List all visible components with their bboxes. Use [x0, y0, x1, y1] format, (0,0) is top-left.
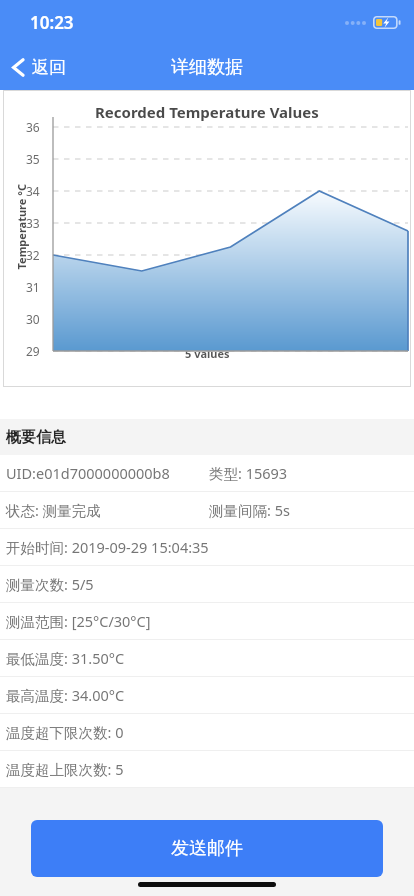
button[interactable]: 最高温度: 34.00°C	[0, 677, 414, 713]
staticText: 概要信息	[6, 428, 66, 447]
staticText: Temperature °C	[13, 183, 28, 269]
staticText: 32	[26, 247, 40, 263]
staticText: 测量间隔: 5s	[209, 500, 290, 520]
button[interactable]: 温度超上限次数: 5	[0, 751, 414, 787]
staticText: 34	[26, 183, 40, 199]
staticText: 30	[26, 311, 40, 327]
other: Back	[9, 56, 28, 79]
button[interactable]: 测量次数: 5/5	[0, 566, 414, 602]
staticText: 31	[26, 279, 40, 295]
staticText: 36	[26, 119, 40, 135]
staticText: 35	[26, 151, 40, 167]
staticText: 5 values	[185, 346, 230, 361]
button[interactable]: 测温范围: [25°C/30°C]	[0, 603, 414, 639]
staticText: 最高温度: 34.00°C	[6, 685, 125, 705]
staticText: 返回	[32, 57, 66, 78]
staticText: 测量次数: 5/5	[6, 574, 94, 594]
button[interactable]: 发送邮件	[31, 820, 383, 877]
button[interactable]: 开始时间: 2019-09-29 15:04:35	[0, 529, 414, 565]
button[interactable]: UID:e01d7000000000b8	[0, 455, 414, 491]
button[interactable]: 最低温度: 31.50°C	[0, 640, 414, 676]
staticText: 温度超下限次数: 0	[6, 722, 124, 742]
staticText: 最低温度: 31.50°C	[6, 648, 125, 668]
staticText: 测温范围: [25°C/30°C]	[6, 611, 151, 631]
staticText: 33	[26, 215, 40, 231]
staticText: 发送邮件	[171, 837, 243, 860]
button[interactable]: Back	[0, 51, 80, 84]
staticText: 状态: 测量完成	[6, 500, 101, 520]
staticText: 29	[26, 343, 40, 359]
staticText: 温度超上限次数: 5	[6, 759, 124, 779]
button[interactable]: 温度超下限次数: 0	[0, 714, 414, 750]
staticText: 开始时间: 2019-09-29 15:04:35	[6, 537, 209, 557]
button[interactable]: 状态: 测量完成	[0, 492, 414, 528]
staticText: 类型: 15693	[209, 463, 288, 483]
staticText: Recorded Temperature Values	[95, 102, 319, 122]
staticText: UID:e01d7000000000b8	[6, 463, 170, 483]
staticText: 详细数据	[171, 56, 243, 79]
staticText: 10:23	[30, 11, 74, 34]
